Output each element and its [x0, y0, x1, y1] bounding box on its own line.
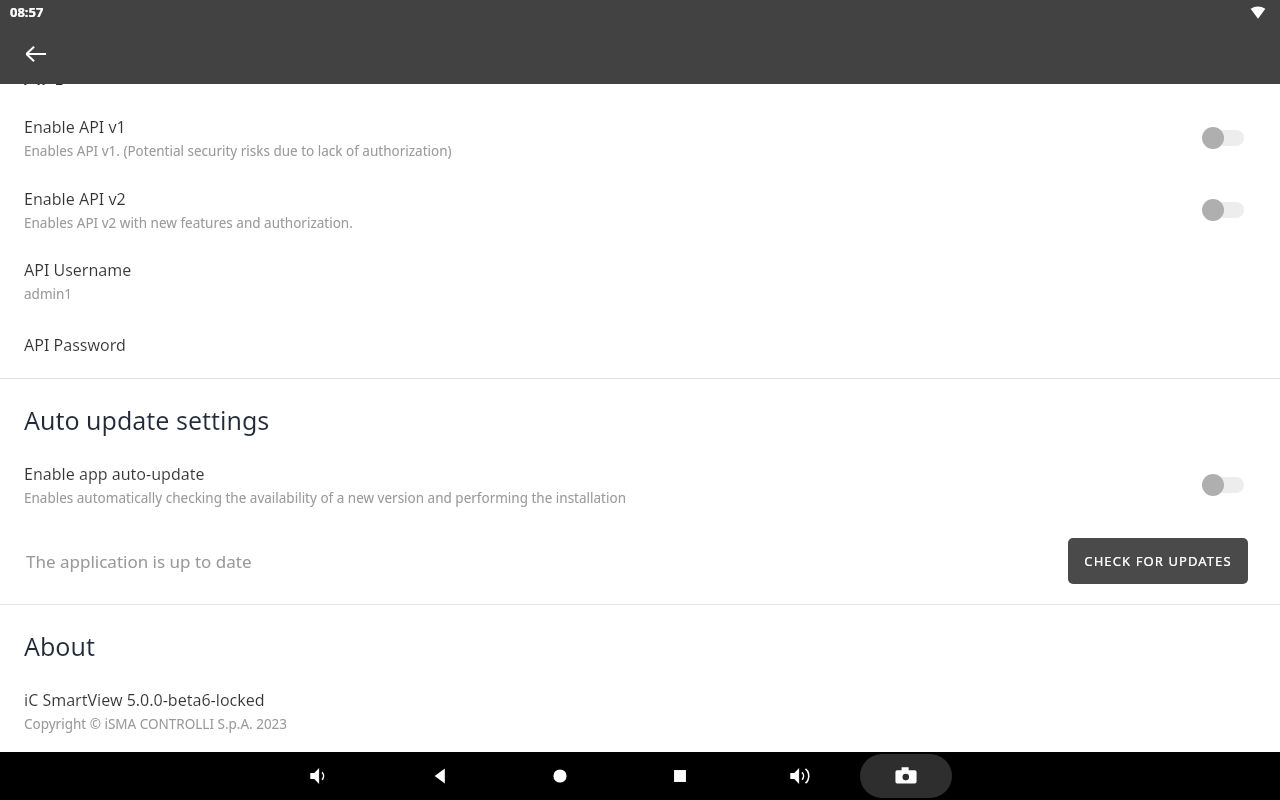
staticText: admin1: [24, 285, 73, 303]
button[interactable]: Back: [420, 756, 460, 796]
staticText: API Password: [24, 334, 126, 356]
staticText: API Username: [24, 259, 132, 281]
staticText: Enable app auto-update: [24, 463, 205, 485]
button[interactable]: Back: [12, 30, 60, 78]
button[interactable]: Recents: [660, 756, 700, 796]
button[interactable]: API Username: [0, 259, 1280, 303]
staticText: Enable API v2: [24, 188, 126, 210]
staticText: 08:57: [10, 3, 44, 21]
staticText: Copyright © iSMA CONTROLLI S.p.A. 2023: [24, 715, 288, 733]
staticText: Enables API v2 with new features and aut…: [24, 214, 353, 232]
button[interactable]: API Password: [0, 334, 1280, 356]
staticText: CHECK FOR UPDATES: [1084, 552, 1232, 570]
button[interactable]: Enable app auto-update: [0, 463, 1280, 507]
button[interactable]: CHECK FOR UPDATES: [1068, 538, 1248, 584]
staticText: API: [24, 58, 64, 92]
button[interactable]: Volume up: [780, 756, 820, 796]
button[interactable]: Enable API v2: [0, 188, 1280, 232]
staticText: Enables API v1. (Potential security risk…: [24, 142, 452, 160]
button[interactable]: Screenshot: [860, 754, 952, 798]
staticText: Enables automatically checking the avail…: [24, 489, 626, 507]
button[interactable]: Home: [540, 756, 580, 796]
staticText: About: [24, 629, 95, 663]
button[interactable]: Volume down: [300, 756, 340, 796]
button[interactable]: Enable API v1: [0, 116, 1280, 160]
button[interactable]: iC SmartView 5.0.0-beta6-locked: [0, 689, 1280, 733]
staticText: Auto update settings: [24, 403, 270, 437]
staticText: iC SmartView 5.0.0-beta6-locked: [24, 689, 265, 711]
staticText: Enable API v1: [24, 116, 126, 138]
staticText: The application is up to date: [26, 550, 1068, 573]
